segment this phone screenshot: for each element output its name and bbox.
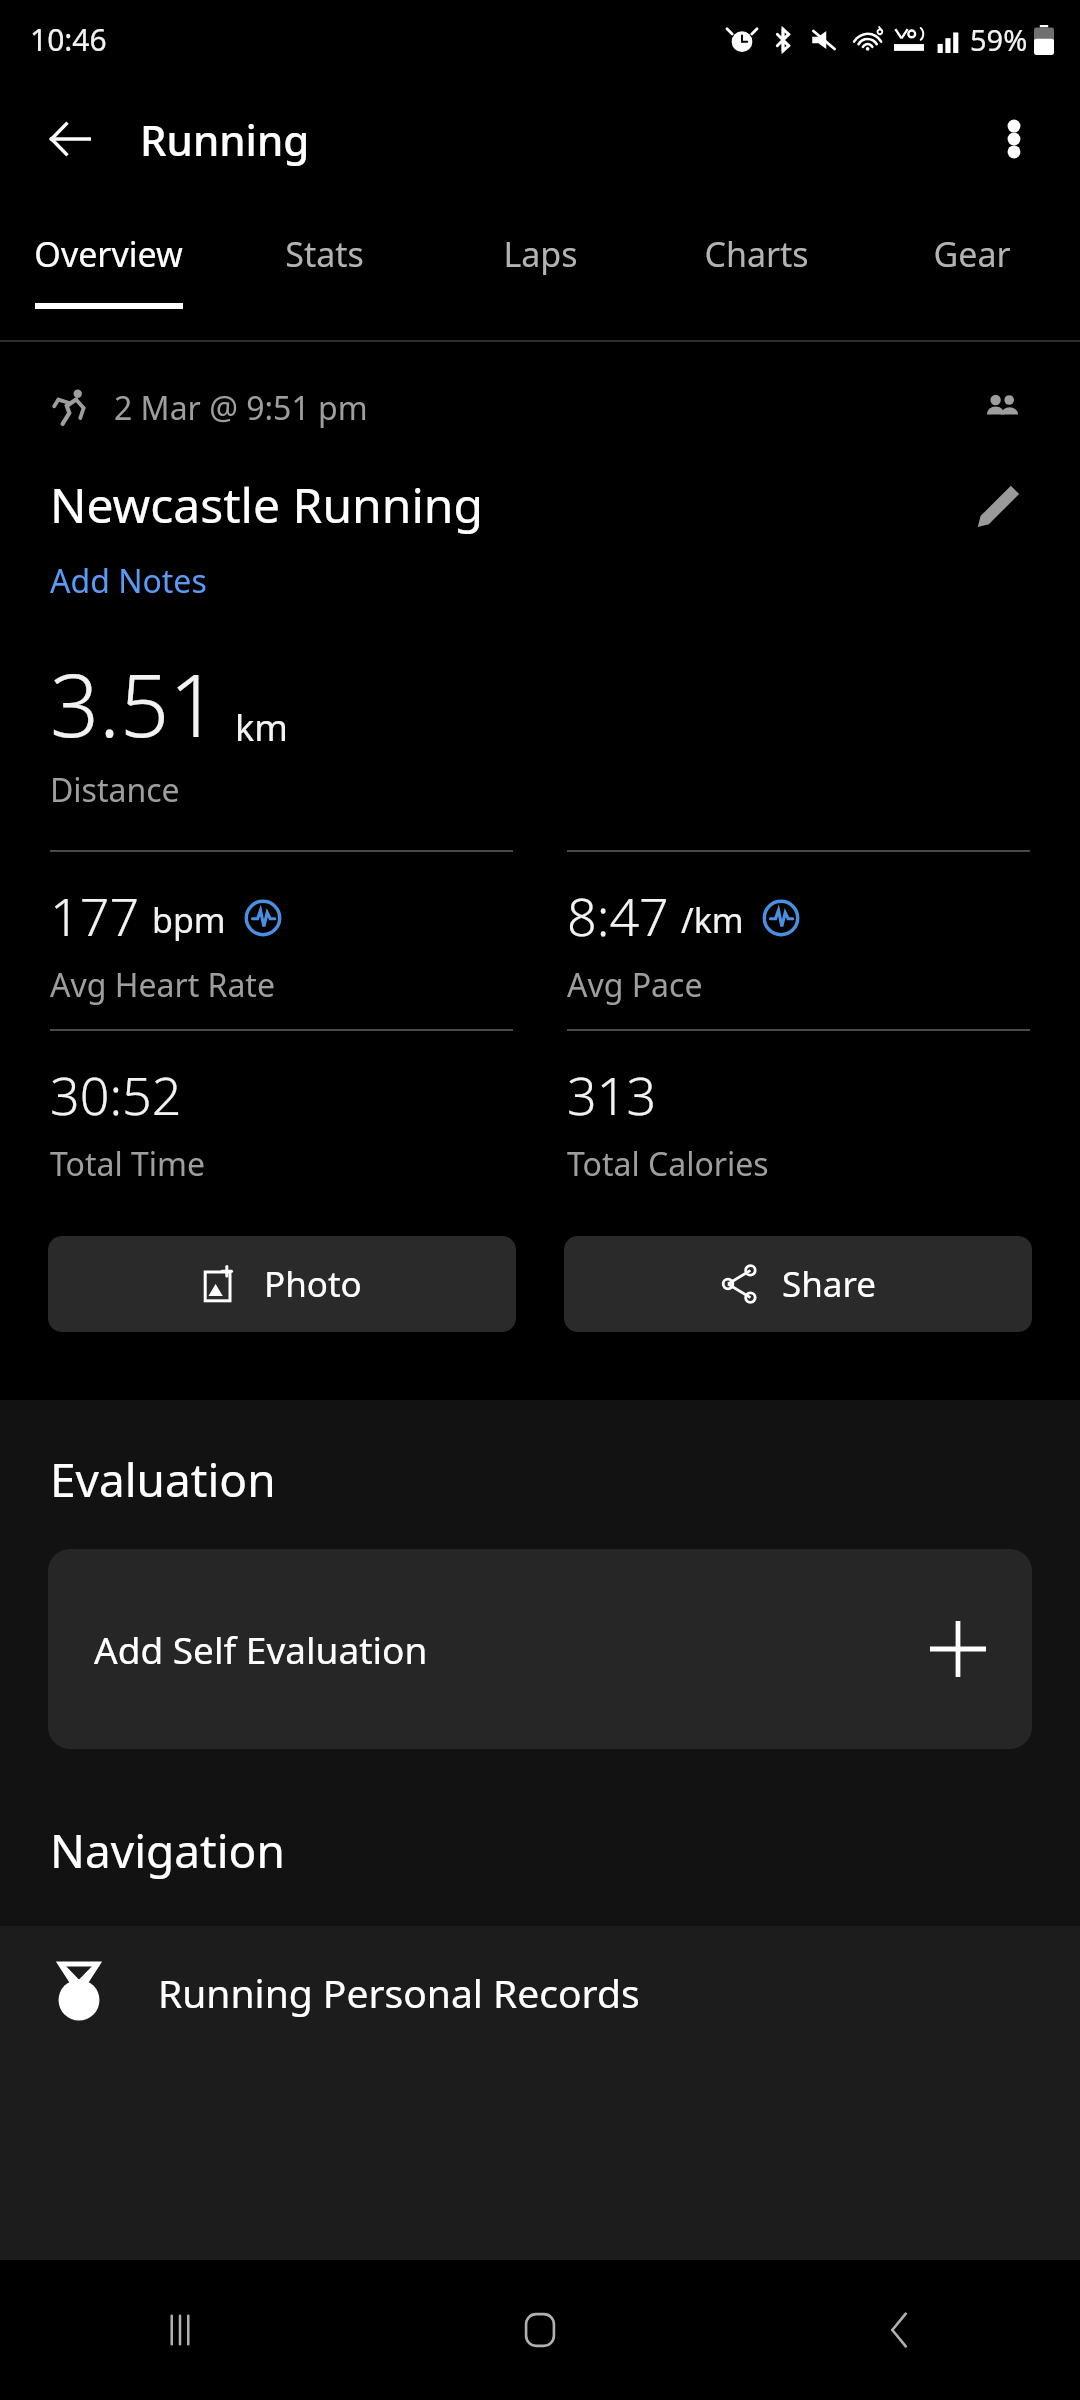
staticText: Add Self Evaluation (94, 1624, 930, 1674)
staticText: Charts (704, 231, 809, 277)
button[interactable]: Participants (974, 380, 1030, 436)
staticText: 59% (970, 20, 1028, 59)
button[interactable]: Add Self Evaluation (48, 1549, 1032, 1749)
staticText: Running Personal Records (158, 1966, 640, 2019)
button[interactable]: Back (720, 2260, 1080, 2400)
button[interactable]: More options (972, 97, 1056, 181)
button[interactable]: Overview (0, 200, 216, 340)
button[interactable]: Laps (432, 200, 648, 340)
staticText: Evaluation (50, 1448, 276, 1511)
staticText: 2 Mar @ 9:51 pm (114, 386, 368, 430)
staticText: /km (681, 897, 744, 943)
staticText: Avg Heart Rate (50, 963, 275, 1007)
button[interactable]: Stats (216, 200, 432, 340)
staticText: 30:52 (50, 1059, 182, 1130)
staticText: Total Calories (567, 1142, 769, 1186)
button[interactable]: Photo (48, 1236, 516, 1332)
staticText: Gear (933, 231, 1011, 277)
staticText: bpm (152, 897, 226, 943)
staticText: km (235, 703, 288, 752)
staticText: 10:46 (30, 19, 107, 60)
staticText: Overview (34, 231, 183, 277)
button[interactable]: Add Notes (50, 559, 207, 603)
button[interactable]: Home (360, 2260, 720, 2400)
staticText: Laps (503, 231, 578, 277)
staticText: 3.51 (50, 645, 219, 762)
button[interactable]: Charts (648, 200, 864, 340)
staticText: 8:47 (567, 880, 669, 951)
staticText: 177 (50, 880, 140, 951)
staticText: Navigation (50, 1819, 285, 1882)
staticText: Stats (285, 231, 364, 277)
staticText: Total Time (50, 1142, 206, 1186)
button[interactable]: Gear (864, 200, 1080, 340)
staticText: Running (140, 111, 310, 168)
button[interactable]: Recent apps (0, 2260, 360, 2400)
staticText: Avg Pace (567, 963, 703, 1007)
staticText: Newcastle Running (50, 472, 966, 537)
button[interactable]: Share (564, 1236, 1032, 1332)
staticText: Distance (50, 768, 180, 812)
button[interactable]: Back (28, 97, 112, 181)
button[interactable]: Running Personal Records (0, 1926, 1080, 2058)
staticText: 313 (567, 1059, 657, 1130)
staticText: Add Notes (50, 559, 207, 603)
staticText: Share (782, 1260, 876, 1308)
staticText: Photo (264, 1260, 362, 1308)
button[interactable]: Edit (966, 473, 1030, 537)
